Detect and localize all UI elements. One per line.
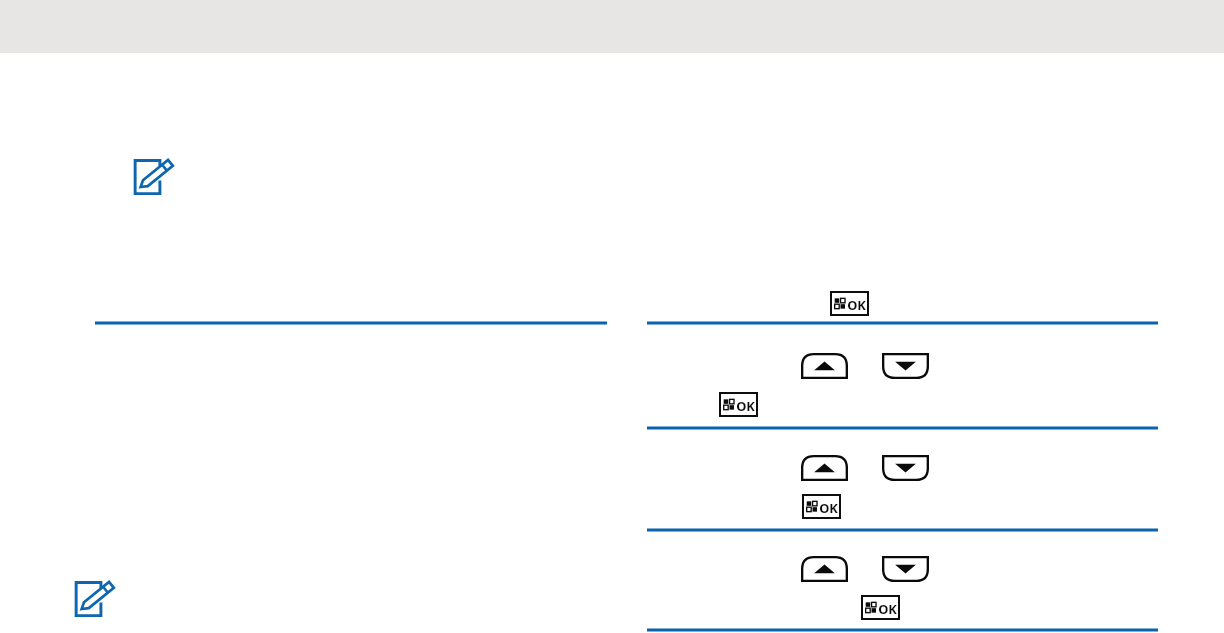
button[interactable]: Scroll up (801, 556, 848, 582)
button[interactable]: OK key (803, 495, 840, 518)
button[interactable]: OK key (862, 596, 899, 619)
button[interactable]: Scroll down (882, 556, 929, 582)
button[interactable]: OK key (720, 393, 757, 416)
button[interactable]: Scroll up (801, 353, 848, 379)
button[interactable]: Scroll up (801, 455, 848, 481)
button[interactable]: Note (74, 579, 113, 618)
staticText: OK (847, 296, 866, 312)
button[interactable]: Scroll down (882, 353, 929, 379)
staticText: OK (736, 397, 755, 413)
button[interactable]: OK key (831, 292, 868, 315)
staticText: OK (819, 499, 838, 515)
button[interactable]: Scroll down (882, 455, 929, 481)
staticText: OK (878, 600, 897, 616)
button[interactable]: Note (133, 157, 172, 196)
